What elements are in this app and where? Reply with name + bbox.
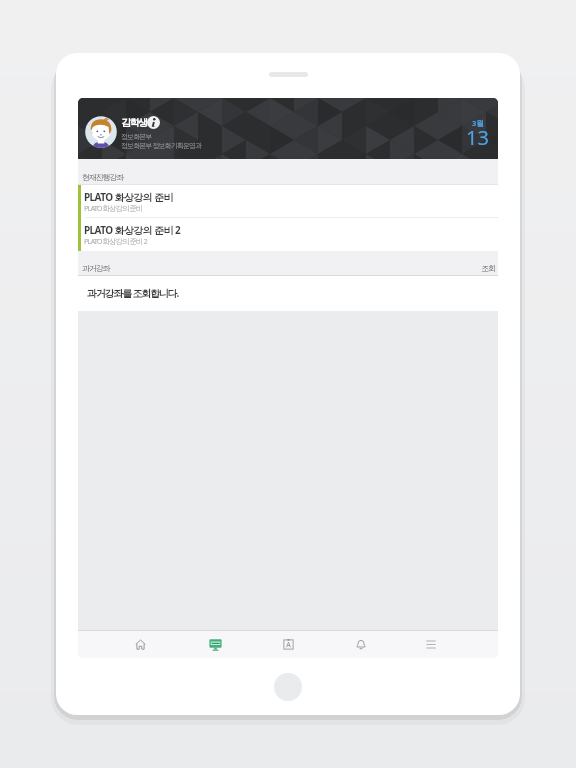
button[interactable]: PLATO 화상강의 준비 bbox=[78, 185, 498, 218]
button[interactable] bbox=[194, 631, 236, 658]
staticText: 13 bbox=[466, 124, 489, 151]
button[interactable] bbox=[119, 631, 161, 658]
button[interactable] bbox=[267, 631, 309, 658]
staticText: 과거강좌를 조회합니다. bbox=[87, 286, 179, 300]
staticText: PLATO 화상강의 준비 2 bbox=[84, 236, 147, 246]
staticText: 과거강좌 bbox=[82, 263, 110, 273]
staticText: 정보화본부 정보화기획운영과 bbox=[121, 141, 202, 151]
staticText: 김학생 bbox=[121, 116, 147, 129]
staticText: 현재진행강좌 bbox=[82, 172, 124, 182]
staticText: PLATO 화상강의 준비 bbox=[84, 190, 173, 204]
button[interactable]: 과거강좌를 조회합니다. bbox=[78, 276, 498, 311]
staticText: PLATO 화상강의 준비 2 bbox=[84, 223, 181, 237]
button[interactable] bbox=[340, 631, 382, 658]
button[interactable] bbox=[274, 673, 302, 701]
button[interactable]: PLATO 화상강의 준비 2 bbox=[78, 218, 498, 251]
staticText: PLATO 화상강의 준비 bbox=[84, 203, 143, 213]
button[interactable]: 조회 bbox=[472, 251, 498, 276]
button[interactable] bbox=[410, 631, 452, 658]
staticText: 정보화본부 bbox=[121, 132, 152, 141]
button[interactable]: 김학생 bbox=[78, 98, 498, 159]
staticText: 조회 bbox=[481, 263, 495, 273]
staticText: 3월 bbox=[472, 118, 484, 128]
